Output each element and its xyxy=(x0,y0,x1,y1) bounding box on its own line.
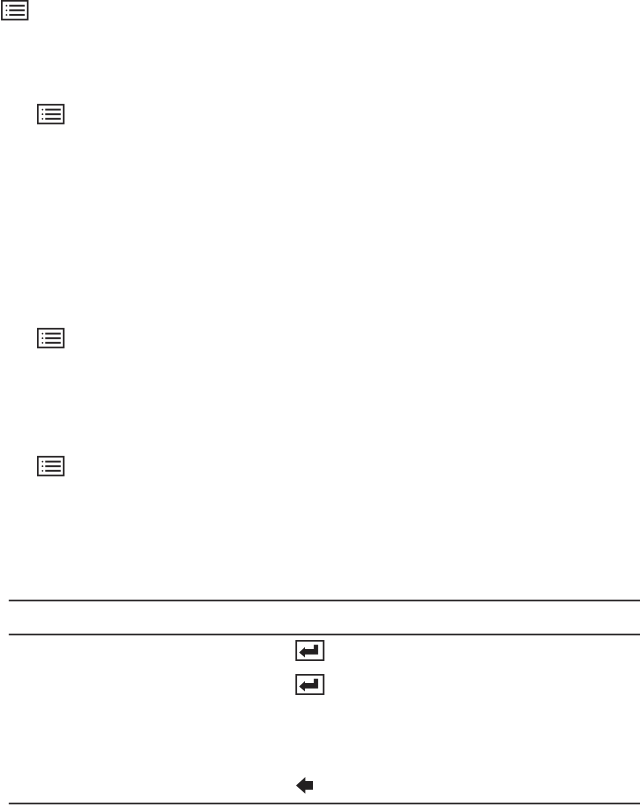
button[interactable]: Archive xyxy=(0,408,640,598)
button[interactable]: Open navigation menu xyxy=(0,0,32,23)
button[interactable]: Overview xyxy=(0,56,640,280)
button[interactable]: Confirm xyxy=(0,670,640,704)
button[interactable]: Recent activity xyxy=(0,280,640,408)
button[interactable]: Submit xyxy=(0,636,640,670)
button[interactable]: Back xyxy=(292,773,317,798)
